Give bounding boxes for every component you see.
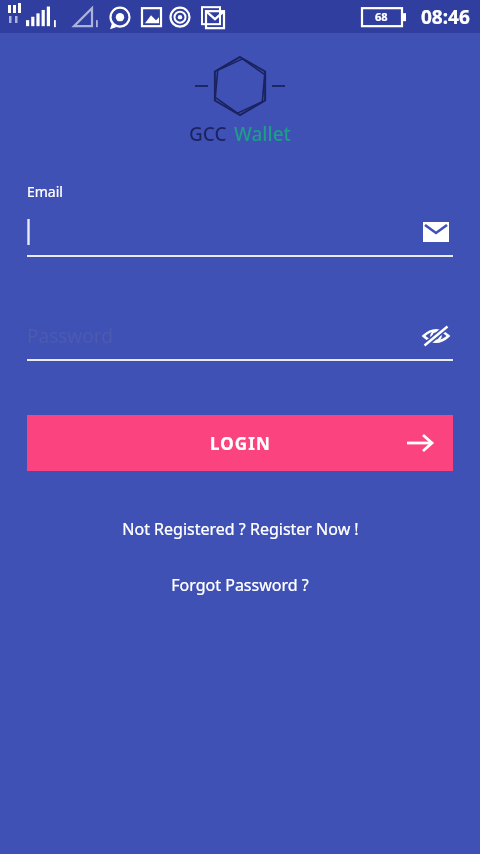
- staticText: Forgot Password ?: [171, 574, 309, 596]
- staticText: 68: [375, 9, 388, 24]
- button[interactable]: LOGIN: [27, 415, 453, 471]
- staticText: 08:46: [421, 4, 470, 30]
- staticText: Email: [27, 182, 63, 201]
- button[interactable]: Forgot Password ?: [0, 574, 480, 596]
- button[interactable]: Email: [27, 215, 453, 249]
- staticText: GCC: [189, 121, 227, 147]
- staticText: Not Registered ? Register Now !: [122, 518, 359, 540]
- button[interactable]: Password: [27, 319, 453, 353]
- button[interactable]: Email: [419, 215, 453, 249]
- staticText: Password: [27, 323, 113, 349]
- staticText: Wallet: [234, 121, 291, 147]
- button[interactable]: Not Registered ? Register Now !: [0, 518, 480, 540]
- staticText: LOGIN: [210, 432, 271, 455]
- button[interactable]: Show password: [419, 319, 453, 353]
